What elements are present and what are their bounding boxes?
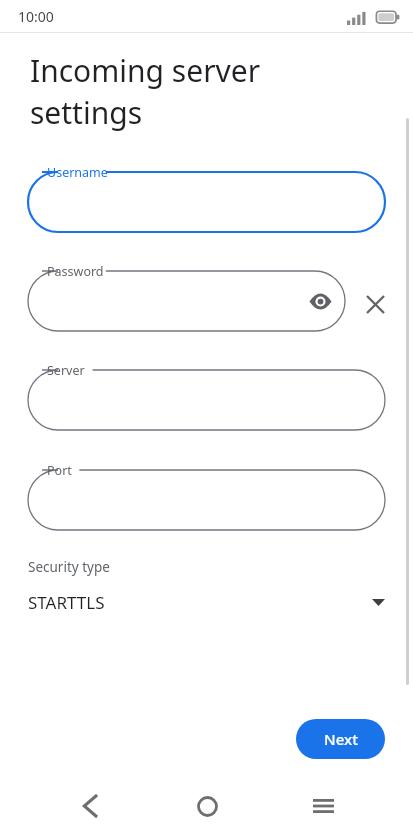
- staticText: Password: [47, 263, 104, 280]
- button[interactable]: Show password: [302, 283, 338, 319]
- staticText: 10:00: [18, 7, 54, 26]
- button[interactable]: Home: [181, 780, 233, 832]
- button[interactable]: Recent apps: [297, 780, 349, 832]
- button[interactable]: Port: [28, 458, 385, 530]
- button[interactable]: Next: [296, 719, 385, 759]
- staticText: Server: [47, 362, 85, 379]
- button[interactable]: Clear password: [357, 286, 393, 322]
- button[interactable]: Username: [28, 160, 385, 232]
- staticText: Security type: [28, 558, 110, 576]
- staticText: Username: [47, 164, 108, 181]
- button[interactable]: Back: [65, 780, 117, 832]
- button[interactable]: Server: [28, 358, 385, 430]
- staticText: STARTTLS: [28, 591, 105, 614]
- staticText: Next: [324, 729, 358, 749]
- staticText: Port: [47, 462, 72, 479]
- button[interactable]: Security type: [0, 558, 413, 614]
- button[interactable]: Password: [28, 259, 345, 331]
- staticText: Incoming server settings: [30, 50, 261, 133]
